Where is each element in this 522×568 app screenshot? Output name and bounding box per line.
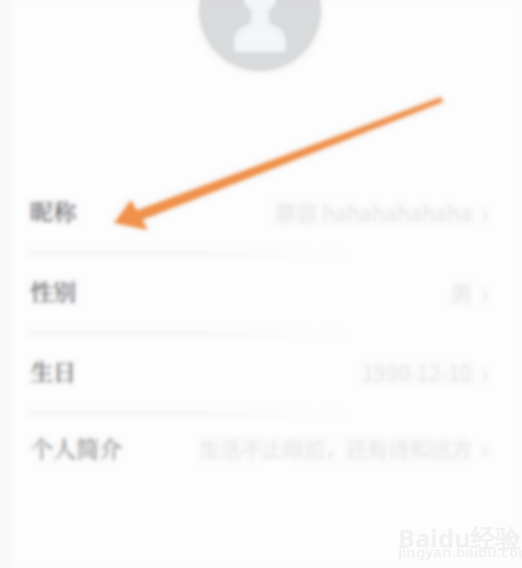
staticText: Baidu经验 [398,521,520,555]
button[interactable]: 生日 [30,354,76,387]
staticText: 慕容 hahahahahaha [275,197,472,227]
staticText: 生日 [30,354,76,387]
staticText: jingyan.baidu.com [398,542,522,561]
button[interactable]: 男 [0,279,488,305]
staticText: 个人简介 [30,431,122,464]
staticText: 1990-12-10 [362,357,472,387]
button[interactable]: 1990-12-10 [0,359,488,385]
staticText: 生活不止眼前，还有诗和远方 [199,433,472,463]
button[interactable]: 性别 [30,274,76,307]
button[interactable]: 生活不止眼前，还有诗和远方 [0,435,488,461]
staticText: 昵称 [30,194,76,227]
button[interactable]: 慕容 hahahahahaha [0,199,488,225]
button[interactable]: 昵称 [30,194,76,227]
staticText: 男 [451,277,472,307]
button[interactable]: 个人简介 [30,431,122,464]
staticText: 性别 [30,274,76,307]
